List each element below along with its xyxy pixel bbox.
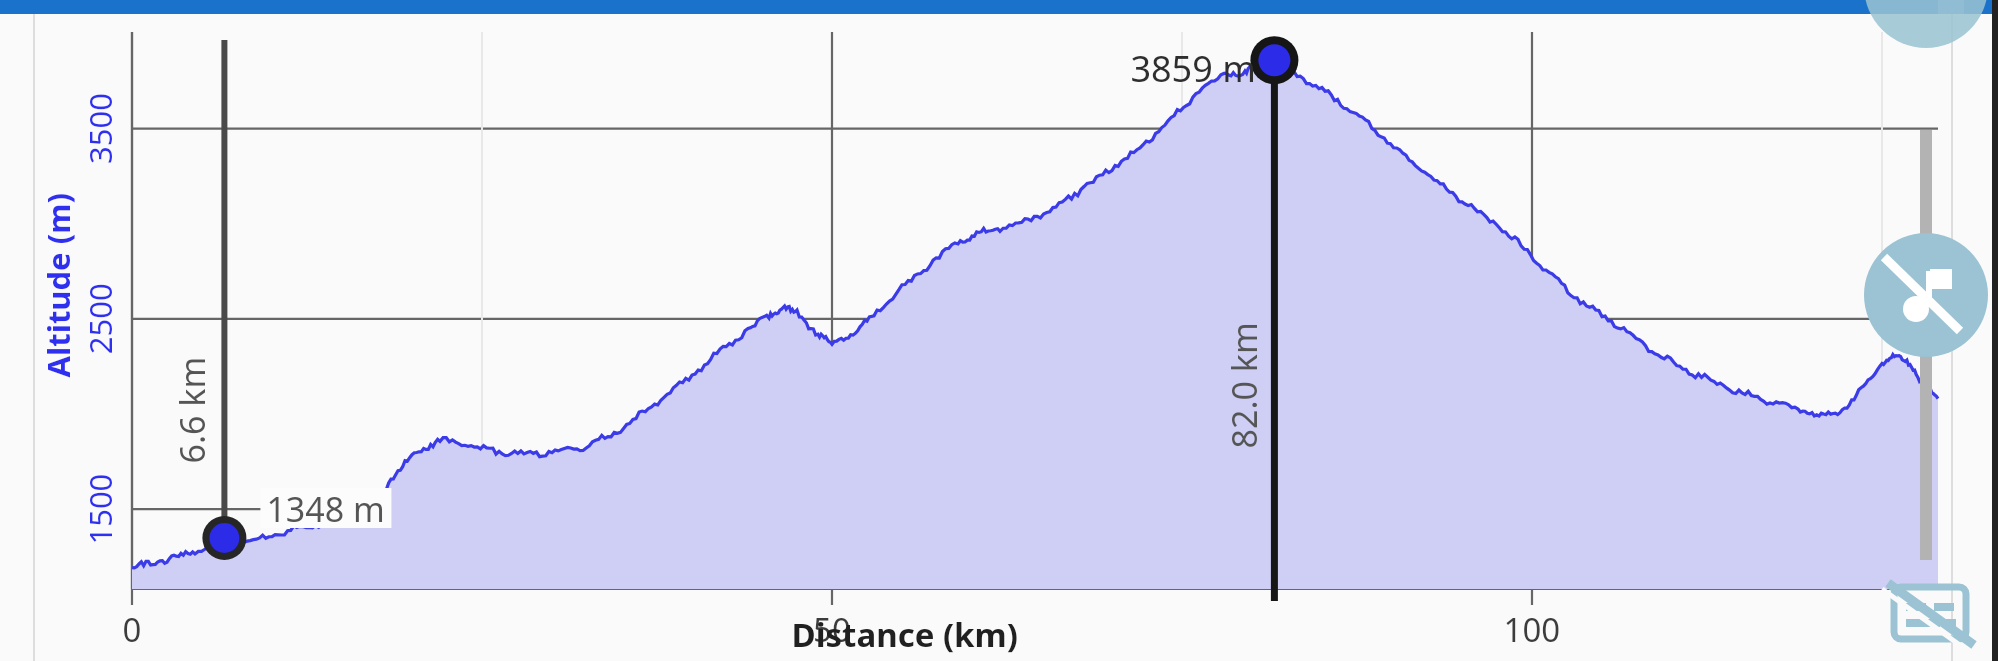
button[interactable]: Overlay controls bbox=[0, 0, 1998, 661]
other: Subtitles off bbox=[0, 0, 1998, 661]
other: Top action bbox=[0, 0, 1998, 661]
other: Overlay controls bbox=[0, 0, 1998, 661]
